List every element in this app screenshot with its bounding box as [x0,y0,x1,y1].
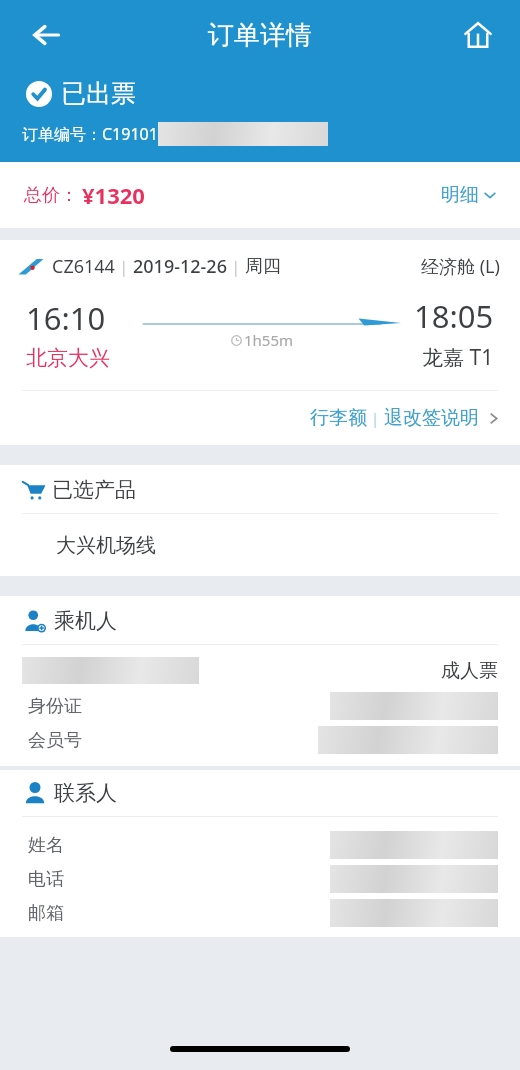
staticText: 大兴机场线 [56,533,156,558]
staticText: CZ6144 [52,254,115,279]
staticText: | [227,256,245,278]
staticText: 经济舱 (L) [421,254,500,279]
staticText: 会员号 [28,729,82,752]
staticText: | [367,408,384,428]
staticText: 订单编号：C19101 [22,123,158,145]
staticText: 行李额 [310,406,367,430]
staticText: 2019-12-26 [133,254,227,279]
staticText: ¥1320 [82,180,145,210]
staticText: 1h55m [244,330,294,350]
staticText: 周四 [245,255,281,278]
staticText: 北京大兴 [26,345,110,371]
staticText: 总价： [24,184,78,207]
staticText: 身份证 [28,695,82,718]
button[interactable]: 行李额 [306,398,504,438]
staticText: 乘机人 [54,608,117,634]
staticText: 明细 [441,183,479,207]
staticText: 已选产品 [52,477,136,503]
staticText: 龙嘉 T1 [422,343,494,372]
staticText: 姓名 [28,834,64,857]
button[interactable]: Back [22,11,70,59]
staticText: 邮箱 [28,902,64,925]
staticText: 退改签说明 [384,406,479,430]
staticText: 16:10 [26,297,106,339]
staticText: 电话 [28,868,64,891]
staticText: 18:05 [414,295,494,337]
staticText: | [115,256,133,278]
staticText: 联系人 [54,780,117,806]
staticText: 订单详情 [208,19,312,52]
button[interactable]: Home [454,11,502,59]
staticText: 成人票 [441,659,498,683]
button[interactable]: 大兴机场线 [0,514,520,576]
button[interactable]: 明细 [435,177,502,213]
staticText: 已出票 [61,78,136,109]
